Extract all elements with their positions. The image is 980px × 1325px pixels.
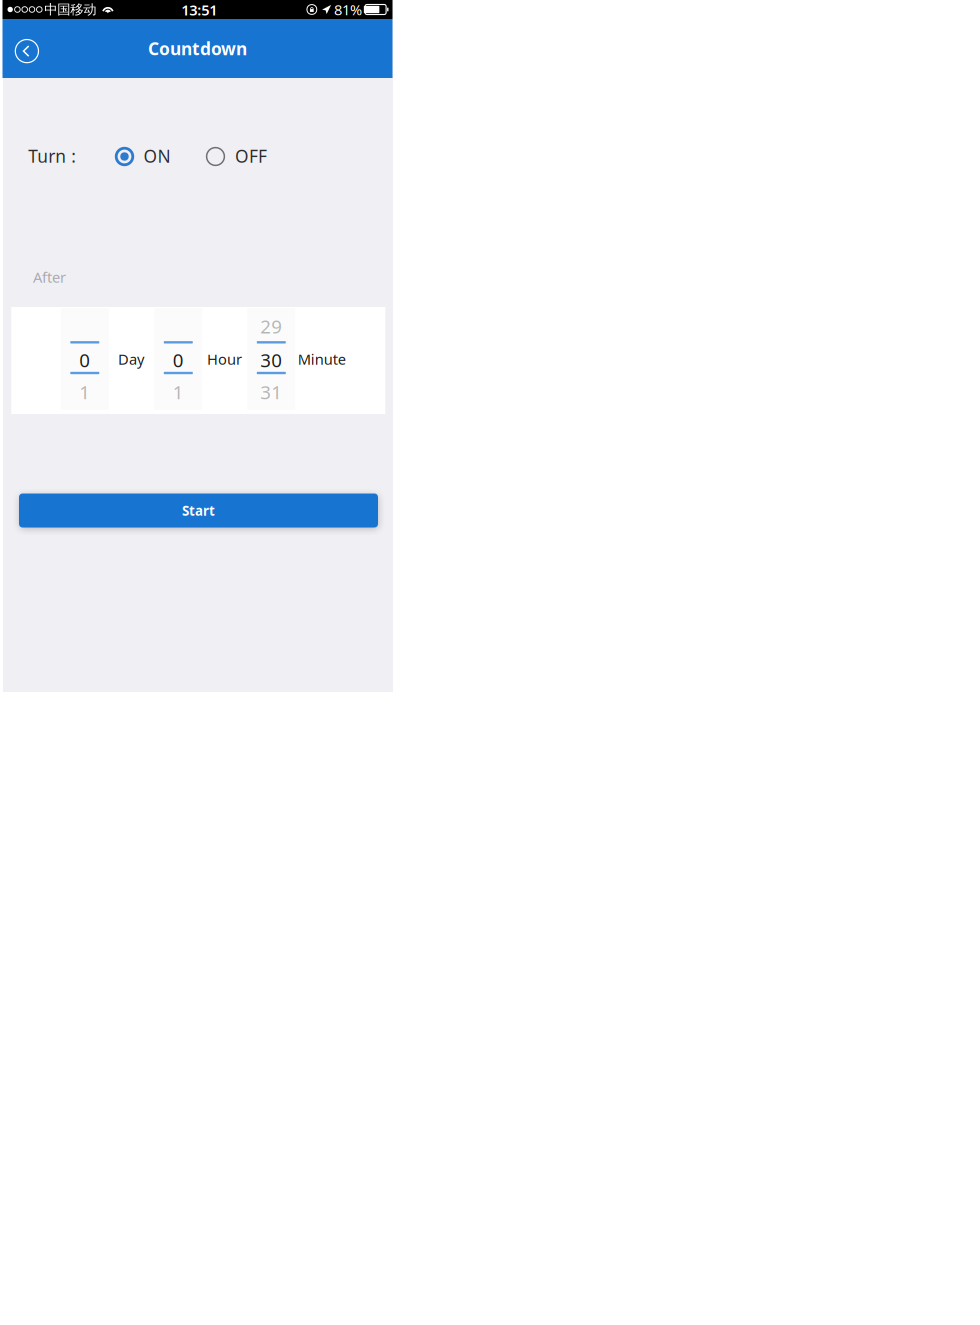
button[interactable]: OFF — [205, 142, 269, 170]
staticText: Hour — [207, 349, 242, 369]
button[interactable]: 0 Hour — [154, 308, 202, 410]
staticText: 1 — [79, 380, 90, 404]
staticText: 13:51 — [181, 0, 217, 20]
button[interactable]: Start — [19, 493, 378, 527]
staticText: After — [33, 267, 66, 287]
staticText: Countdown — [148, 37, 247, 60]
staticText: Day — [118, 349, 144, 369]
button[interactable]: Back — [5, 29, 49, 73]
staticText: 30 — [260, 348, 282, 372]
staticText: Minute — [298, 349, 346, 369]
button[interactable]: 0 Day — [61, 308, 109, 410]
staticText: 1 — [173, 380, 184, 404]
staticText: 0 — [79, 348, 90, 372]
staticText: ON — [143, 144, 170, 167]
button[interactable]: 30 Minute — [247, 308, 295, 410]
staticText: Turn : — [28, 144, 76, 167]
staticText: Start — [182, 502, 215, 519]
staticText: 31 — [260, 380, 282, 404]
staticText: 0 — [173, 348, 184, 372]
staticText: 81% — [334, 0, 362, 19]
staticText: 中国移动 — [44, 1, 96, 18]
staticText: OFF — [235, 144, 267, 167]
staticText: 29 — [260, 314, 282, 339]
button[interactable]: ON — [114, 142, 172, 170]
